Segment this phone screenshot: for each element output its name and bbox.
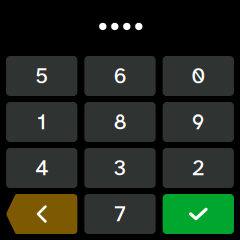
staticText: 0 [191,62,205,90]
staticText: 5 [35,62,48,90]
button[interactable]: 9 [163,102,234,142]
staticText: 8 [113,108,126,136]
button[interactable]: 0 [163,56,234,96]
button[interactable]: 2 [163,148,234,188]
button[interactable]: 5 [6,56,77,96]
staticText: 6 [113,62,126,90]
staticText: 1 [37,108,46,136]
button[interactable]: 4 [6,148,77,188]
button[interactable]: Confirm [163,194,234,234]
button[interactable]: Delete [6,194,77,234]
staticText: 7 [114,200,125,228]
button[interactable]: 8 [84,102,156,142]
staticText: 9 [192,108,205,136]
button[interactable]: 1 [6,102,77,142]
staticText: 2 [192,154,204,182]
staticText: 3 [113,154,126,182]
button[interactable]: 7 [84,194,156,234]
staticText: 4 [35,154,48,182]
button[interactable]: 6 [84,56,156,96]
button[interactable]: 3 [84,148,156,188]
